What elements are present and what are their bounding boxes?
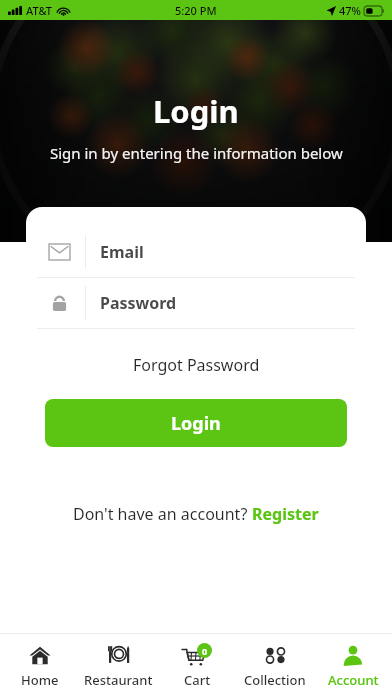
- button[interactable]: Account: [314, 634, 392, 696]
- staticText: 0: [202, 645, 208, 657]
- staticText: Restaurant: [84, 671, 153, 689]
- other: Home: [29, 644, 51, 666]
- staticText: Sign in by entering the information belo…: [50, 143, 343, 163]
- button[interactable]: Login: [45, 399, 347, 447]
- button[interactable]: Password: [26, 278, 366, 328]
- staticText: Password: [100, 292, 177, 314]
- staticText: 47%: [339, 3, 361, 18]
- button[interactable]: Forgot Password: [26, 347, 366, 383]
- button[interactable]: Collection: [236, 634, 314, 696]
- staticText: Login: [153, 90, 239, 132]
- other: Collection: [265, 647, 286, 664]
- button[interactable]: Cart: [158, 634, 236, 696]
- other: Password: [52, 294, 67, 312]
- staticText: Login: [171, 411, 221, 436]
- button[interactable]: Email: [26, 227, 366, 277]
- staticText: Forgot Password: [133, 354, 260, 376]
- staticText: Collection: [244, 671, 306, 689]
- button[interactable]: Don't have an account?: [26, 499, 366, 529]
- other: Cart: [182, 647, 205, 667]
- staticText: 5:20 PM: [175, 3, 217, 18]
- staticText: Cart: [184, 671, 211, 689]
- staticText: Email: [100, 241, 144, 263]
- staticText: Register: [252, 503, 319, 525]
- other: Account: [342, 645, 364, 666]
- staticText: Home: [21, 671, 59, 689]
- button[interactable]: Restaurant: [79, 634, 158, 696]
- other: Email: [49, 244, 70, 260]
- staticText: Don't have an account?: [73, 503, 252, 525]
- button[interactable]: Home: [0, 634, 79, 696]
- staticText: Account: [328, 671, 379, 689]
- staticText: AT&T: [26, 3, 53, 18]
- other: Restaurant: [107, 644, 131, 666]
